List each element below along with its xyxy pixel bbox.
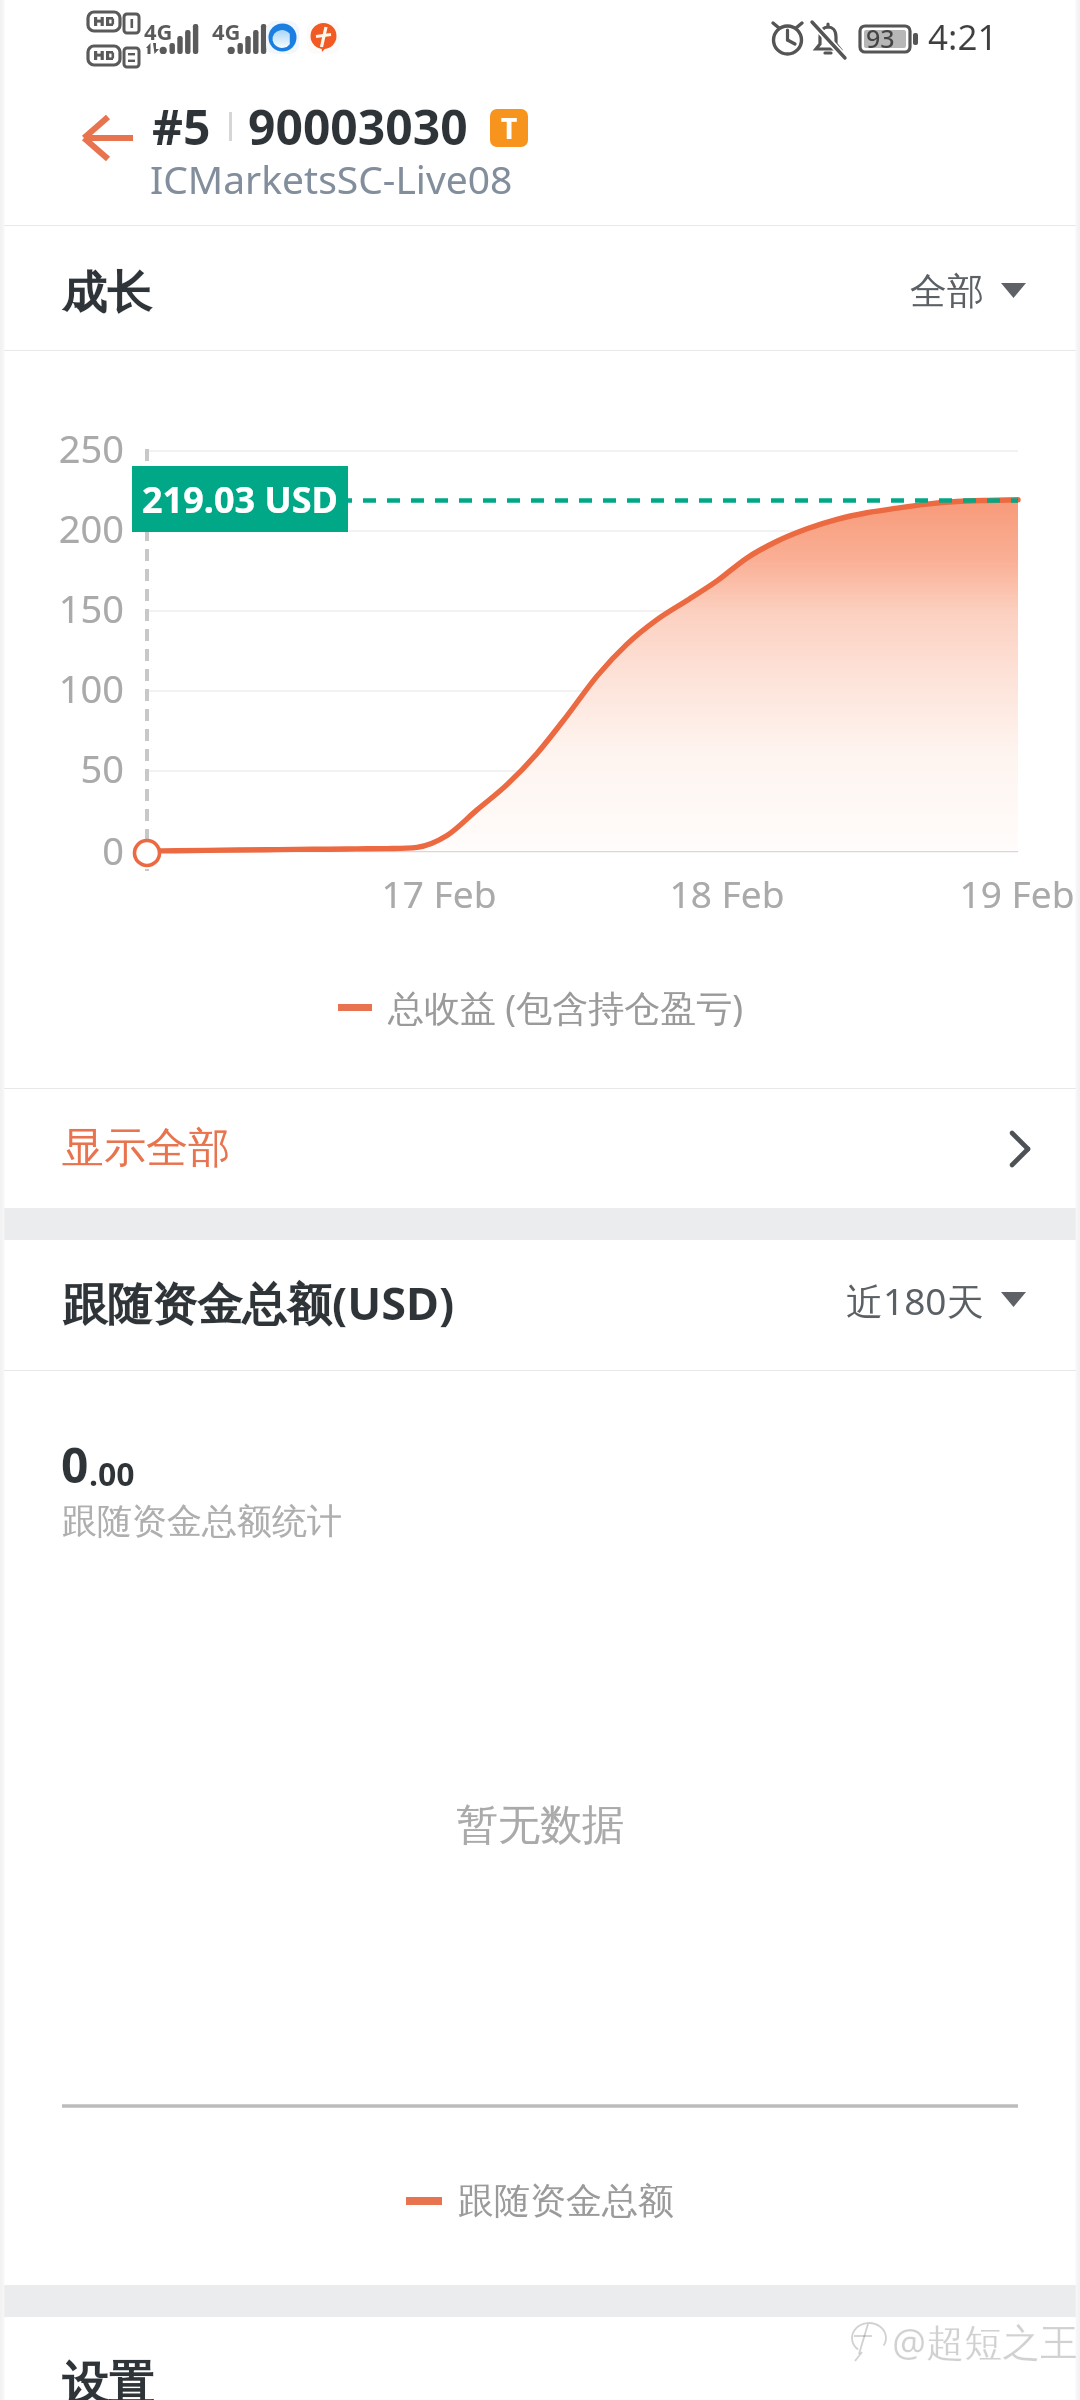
staticText: 成长 [62,265,152,322]
staticText: 4:21 [928,13,998,61]
staticText: 219.03 USD [142,475,338,524]
staticText: 近180天 [846,1275,984,1326]
staticText: 暂无数据 [456,1799,624,1852]
staticText: 100 [0,662,124,714]
staticText: 150 [0,582,124,634]
staticText: 4G [144,16,173,46]
staticText: @超短之王 [892,2315,1079,2367]
staticText: 18 Feb [637,868,817,918]
staticText: #5 [152,94,211,159]
staticText: 跟随资金总额 [458,2178,674,2223]
button[interactable]: Back [72,93,148,165]
staticText: 250 [0,422,124,474]
staticText: 跟随资金总额(USD) [62,1272,455,1333]
staticText: 设置 [62,2355,154,2400]
button[interactable]: 显示全部 [0,1089,1080,1208]
staticText: 93 [866,21,895,55]
staticText: 200 [0,502,124,554]
staticText: 17 Feb [349,868,529,918]
staticText: 跟随资金总额统计 [62,1499,342,1543]
staticText: 50 [0,742,124,794]
staticText: 全部 [910,268,984,315]
staticText: 19 Feb [927,868,1080,918]
staticText: T [501,109,518,147]
staticText: 总收益 (包含持仓盈亏) [388,983,743,1032]
button[interactable]: 全部 [906,256,1030,327]
staticText: ICMarketsSC-Live08 [150,152,513,205]
staticText: 90003030 [248,94,468,159]
staticText: 0 [0,824,124,876]
staticText: .00 [89,1452,135,1496]
staticText: 显示全部 [62,1122,230,1175]
staticText: 0 [61,1432,89,1497]
staticText: 4G [212,16,241,46]
button[interactable]: 近180天 [842,1263,1030,1338]
